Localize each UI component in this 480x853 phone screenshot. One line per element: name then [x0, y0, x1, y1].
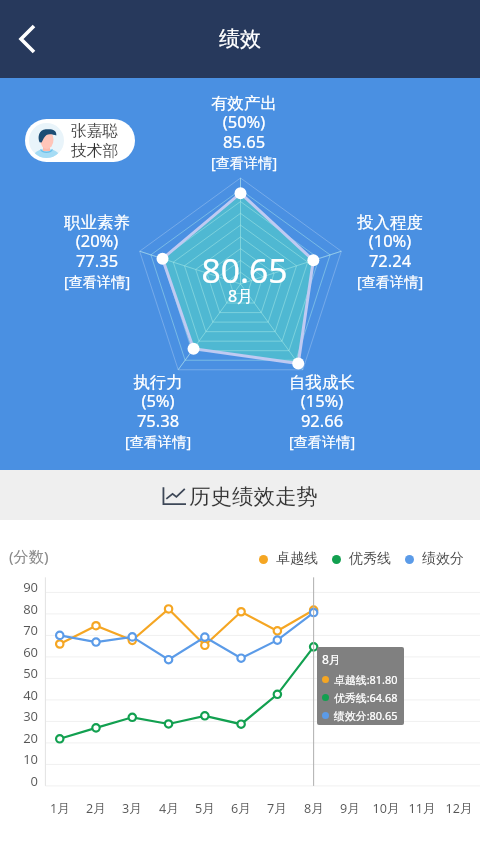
staticText: 技术部	[71, 141, 119, 161]
staticText: 50	[0, 664, 38, 682]
staticText: (15%)	[257, 389, 387, 411]
staticText: 10月	[364, 800, 408, 817]
staticText: 优秀线:64.68	[334, 690, 398, 705]
staticText: 1月	[38, 800, 82, 817]
staticText: 8月	[292, 800, 336, 817]
staticText: 5月	[183, 800, 227, 817]
staticText: (分数)	[9, 546, 49, 567]
staticText: 10	[0, 750, 38, 768]
staticText: 自我成长	[257, 372, 387, 393]
staticText: 77.35	[32, 249, 162, 271]
staticText: 75.38	[93, 409, 223, 431]
staticText: [查看详情]	[93, 432, 223, 451]
staticText: 8月	[322, 651, 341, 667]
staticText: 70	[0, 621, 38, 639]
staticText: 92.66	[257, 409, 387, 431]
button[interactable]: 卓越线	[256, 550, 321, 568]
staticText: 3月	[110, 800, 154, 817]
button[interactable]: [查看详情]	[93, 432, 223, 451]
staticText: 60	[0, 643, 38, 661]
button[interactable]: Back	[6, 17, 50, 61]
button[interactable]: [查看详情]	[257, 432, 387, 451]
staticText: [查看详情]	[325, 272, 455, 291]
button[interactable]: [查看详情]	[32, 272, 162, 291]
staticText: 职业素养	[32, 212, 162, 233]
staticText: 8月	[180, 285, 301, 307]
button[interactable]: [查看详情]	[179, 153, 309, 172]
staticText: [查看详情]	[257, 432, 387, 451]
staticText: 执行力	[93, 372, 223, 393]
staticText: 90	[0, 578, 38, 596]
button[interactable]: 绩效分	[402, 550, 467, 568]
staticText: 9月	[328, 800, 372, 817]
staticText: 张嘉聪	[71, 121, 119, 141]
staticText: 绩效	[219, 26, 261, 52]
button[interactable]: 优秀线	[329, 550, 394, 568]
staticText: 30	[0, 707, 38, 725]
staticText: 72.24	[325, 249, 455, 271]
staticText: 绩效分	[422, 550, 464, 568]
staticText: 85.65	[179, 130, 309, 152]
staticText: 80	[0, 600, 38, 618]
button[interactable]: 张嘉聪	[25, 119, 135, 162]
staticText: 卓越线:81.80	[334, 672, 398, 687]
staticText: 历史绩效走势	[189, 483, 318, 510]
staticText: 卓越线	[276, 550, 318, 568]
staticText: (50%)	[179, 110, 309, 132]
staticText: 11月	[400, 800, 444, 817]
staticText: 有效产出	[179, 93, 309, 114]
staticText: 2月	[74, 800, 118, 817]
staticText: 40	[0, 686, 38, 704]
staticText: (20%)	[32, 229, 162, 251]
staticText: 优秀线	[349, 550, 391, 568]
staticText: [查看详情]	[179, 153, 309, 172]
staticText: (5%)	[93, 389, 223, 411]
staticText: 绩效分:80.65	[334, 708, 398, 723]
staticText: 6月	[219, 800, 263, 817]
staticText: 80.65	[184, 247, 305, 293]
staticText: 7月	[255, 800, 299, 817]
staticText: (10%)	[325, 229, 455, 251]
staticText: [查看详情]	[32, 272, 162, 291]
staticText: 4月	[147, 800, 191, 817]
staticText: 0	[0, 772, 38, 790]
staticText: 投入程度	[325, 212, 455, 233]
staticText: 20	[0, 729, 38, 747]
button[interactable]: [查看详情]	[325, 272, 455, 291]
staticText: 12月	[437, 800, 480, 817]
